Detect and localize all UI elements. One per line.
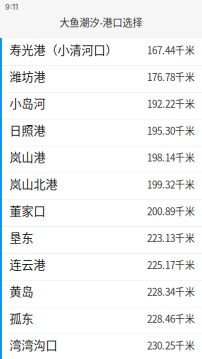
button[interactable]: 日照港 [0,120,202,147]
staticText: 湾湾沟口 [10,337,58,354]
staticText: 198.14千米 [147,150,195,164]
button[interactable]: 寿光港（小清河口） [0,39,202,66]
button[interactable]: 孤东 [0,308,202,334]
staticText: 董家口 [10,202,46,220]
staticText: 228.46千米 [147,311,195,325]
staticText: 垦东 [10,229,34,247]
staticText: 岚山港 [10,149,46,166]
staticText: 孤东 [10,310,34,327]
staticText: 230.25千米 [147,338,195,352]
button[interactable]: 黄岛 [0,281,202,308]
staticText: 223.13千米 [147,231,195,245]
staticText: 176.78千米 [147,70,195,84]
staticText: 199.32千米 [147,177,195,191]
staticText: 192.22千米 [147,97,195,111]
button[interactable]: 湾湾沟口 [0,334,202,359]
staticText: 潍坊港 [10,68,46,85]
button[interactable]: 岚山北港 [0,173,202,200]
staticText: 167.44千米 [147,43,195,57]
staticText: 黄岛 [10,283,34,300]
staticText: 岚山北港 [10,175,58,193]
staticText: 日照港 [10,122,46,139]
staticText: 大鱼潮汐-港口选择 [59,15,142,29]
button[interactable]: 岚山港 [0,146,202,173]
staticText: 225.17千米 [147,258,195,272]
staticText: 寿光港（小清河口） [10,41,118,59]
button[interactable]: 潍坊港 [0,66,202,93]
button[interactable]: 垦东 [0,227,202,254]
button[interactable]: 小岛河 [0,93,202,120]
staticText: 195.30千米 [147,123,195,137]
staticText: 9:11 [5,2,18,11]
button[interactable]: 董家口 [0,200,202,227]
staticText: 200.89千米 [147,204,195,218]
staticText: 小岛河 [10,95,46,112]
staticText: 连云港 [10,256,46,273]
staticText: 228.34千米 [147,284,195,299]
button[interactable]: 连云港 [0,254,202,281]
